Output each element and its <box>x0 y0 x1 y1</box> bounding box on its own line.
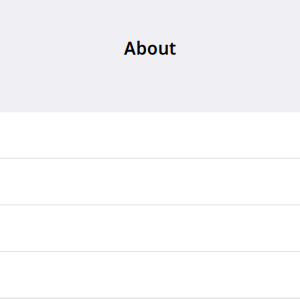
button[interactable]: About detail row <box>0 112 300 159</box>
button[interactable]: About detail row <box>0 252 300 299</box>
button[interactable]: About detail row <box>0 206 300 252</box>
button[interactable]: About detail row <box>0 159 300 206</box>
staticText: About <box>124 36 176 59</box>
